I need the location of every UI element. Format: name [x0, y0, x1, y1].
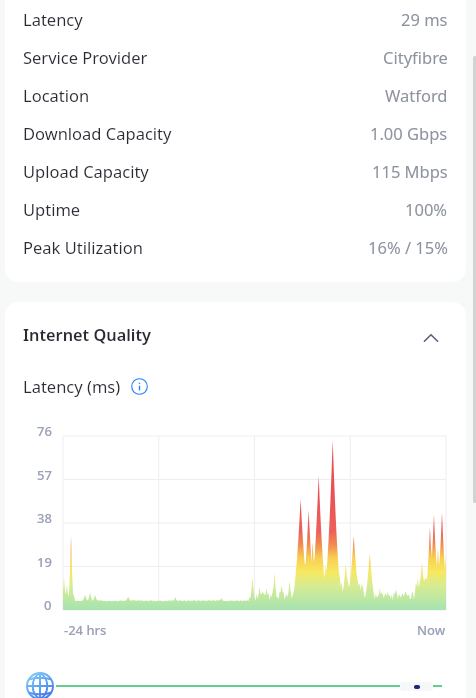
other: Collapse section: [418, 322, 444, 348]
button[interactable]: Peak Utilization: [5, 228, 466, 266]
button[interactable]: Router: [400, 682, 433, 691]
staticText: Internet Quality: [23, 324, 151, 346]
staticText: Peak Utilization: [23, 236, 143, 258]
button[interactable]: Download Capacity: [5, 114, 466, 152]
staticText: 0: [44, 596, 52, 614]
staticText: 115 Mbps: [372, 160, 448, 182]
button[interactable]: Latency: [5, 0, 466, 38]
staticText: Service Provider: [23, 46, 148, 68]
staticText: 1.00 Gbps: [370, 122, 448, 144]
staticText: Watford: [385, 84, 448, 106]
button[interactable]: Latency (ms): [23, 373, 148, 399]
button[interactable]: Upload Capacity: [5, 152, 466, 190]
button[interactable]: Service Provider: [5, 38, 466, 76]
staticText: 38: [37, 509, 52, 527]
staticText: Latency (ms): [23, 375, 121, 397]
staticText: Cityfibre: [383, 46, 448, 68]
staticText: Latency: [23, 8, 83, 30]
staticText: Now: [417, 621, 446, 639]
staticText: Upload Capacity: [23, 160, 149, 182]
staticText: 76: [37, 422, 52, 440]
staticText: 16% / 15%: [368, 236, 448, 258]
button[interactable]: Uptime: [5, 190, 466, 228]
button[interactable]: Internet Quality: [5, 302, 466, 367]
staticText: Location: [23, 84, 90, 106]
staticText: 29 ms: [401, 8, 448, 30]
staticText: 100%: [405, 198, 448, 220]
button[interactable]: Location: [5, 76, 466, 114]
other: Info: [131, 378, 148, 395]
staticText: -24 hrs: [64, 621, 107, 639]
staticText: 57: [37, 466, 52, 484]
staticText: 19: [37, 553, 52, 571]
staticText: Download Capacity: [23, 122, 172, 144]
staticText: Uptime: [23, 198, 81, 220]
